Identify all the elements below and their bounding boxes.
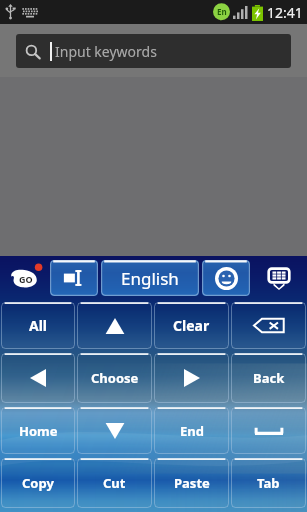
other: Right — [182, 368, 202, 388]
button[interactable]: Input keywords — [16, 34, 291, 68]
button[interactable]: Clear — [154, 302, 229, 349]
button[interactable]: Left — [1, 353, 75, 403]
button[interactable]: End — [154, 407, 229, 454]
staticText: 12:41 — [267, 3, 303, 22]
button[interactable]: Up — [77, 302, 152, 349]
button[interactable]: Emoji — [202, 260, 250, 296]
button[interactable]: Choose — [77, 353, 152, 403]
button[interactable]: Backspace — [231, 302, 306, 349]
button[interactable]: Down — [77, 407, 152, 454]
staticText: All — [29, 316, 48, 335]
staticText: Paste — [174, 474, 210, 492]
button[interactable]: Home — [1, 407, 75, 454]
staticText: Copy — [22, 474, 54, 492]
button[interactable]: Switch input method — [50, 260, 98, 296]
staticText: En — [217, 6, 227, 17]
staticText: Cut — [103, 474, 126, 492]
staticText: Tab — [257, 474, 280, 492]
staticText: Back — [253, 369, 285, 387]
button[interactable]: All — [1, 302, 75, 349]
staticText: English — [121, 267, 179, 290]
button[interactable]: Paste — [154, 458, 229, 508]
staticText: GO — [19, 273, 33, 285]
other: Left — [28, 368, 48, 388]
staticText: Home — [19, 422, 58, 440]
button[interactable]: English — [101, 260, 199, 296]
staticText: Input keywords — [55, 42, 157, 61]
button[interactable]: Hide keyboard — [266, 265, 292, 291]
other: Down — [105, 421, 125, 441]
button[interactable]: Space — [231, 407, 306, 454]
staticText: Choose — [91, 369, 139, 387]
button[interactable]: GO Keyboard menu — [8, 260, 44, 296]
staticText: Clear — [173, 316, 210, 335]
button[interactable]: Right — [154, 353, 229, 403]
button[interactable]: Back — [231, 353, 306, 403]
staticText: End — [180, 422, 204, 440]
other: Space — [255, 425, 283, 436]
button[interactable]: Cut — [77, 458, 152, 508]
button[interactable]: Copy — [1, 458, 75, 508]
button[interactable]: Tab — [231, 458, 306, 508]
other: Backspace — [253, 317, 285, 334]
other: Up — [105, 316, 125, 336]
